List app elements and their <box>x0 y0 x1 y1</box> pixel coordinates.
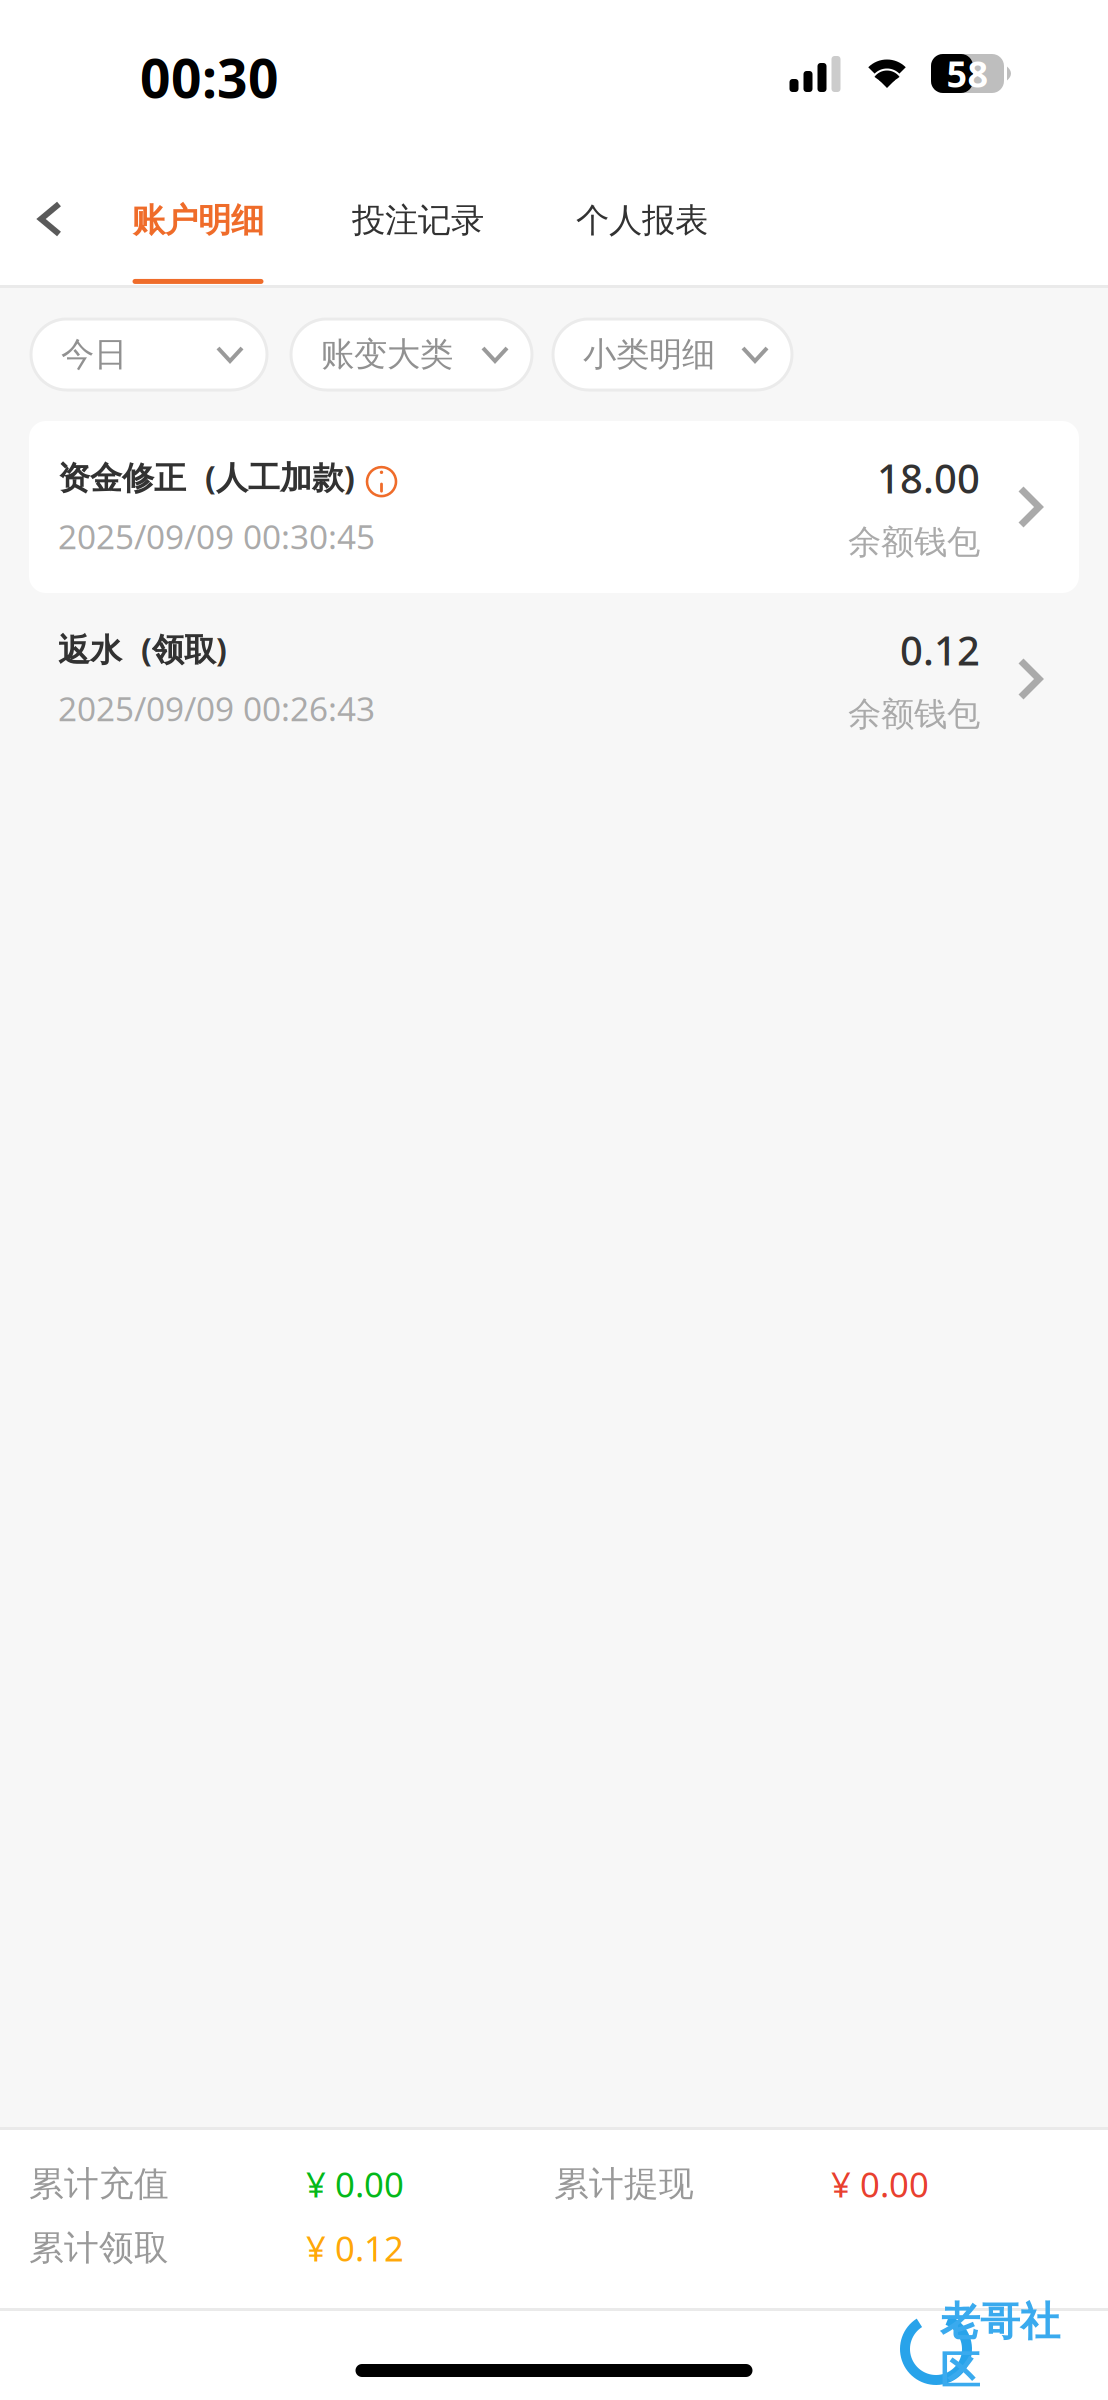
staticText: 返水 <box>58 631 122 670</box>
staticText: 账户明细 <box>132 200 264 241</box>
button[interactable]: 资金修正 <box>29 421 1079 593</box>
staticText: 小类明细 <box>583 334 715 375</box>
button[interactable]: 账变大类 <box>291 319 532 390</box>
staticText: ¥ 0.12 <box>306 2225 404 2271</box>
staticText: 累计充值 <box>29 2163 169 2205</box>
button[interactable]: 投注记录 <box>330 147 506 285</box>
staticText: ¥ 0.00 <box>306 2161 404 2207</box>
button[interactable]: 小类明细 <box>553 319 792 390</box>
staticText: 2025/09/09 00:30:45 <box>58 514 375 558</box>
staticText: 余额钱包 <box>848 694 980 734</box>
staticText: 0.12 <box>900 623 980 677</box>
staticText: 老哥社区 <box>940 2297 1060 2395</box>
staticText: 58 <box>946 50 988 97</box>
staticText: 今日 <box>61 334 127 375</box>
button[interactable]: Back <box>0 147 86 285</box>
staticText: 余额钱包 <box>848 522 980 562</box>
button[interactable]: 个人报表 <box>554 147 730 285</box>
button[interactable]: 今日 <box>31 319 267 390</box>
staticText: 累计领取 <box>29 2227 169 2269</box>
staticText: 投注记录 <box>352 200 484 241</box>
staticText: 2025/09/09 00:26:43 <box>58 686 375 730</box>
staticText: 资金修正 <box>58 459 186 498</box>
button[interactable]: 返水 <box>29 593 1079 765</box>
staticText: 00:30 <box>140 42 279 113</box>
staticText: 累计提现 <box>554 2163 694 2205</box>
staticText: ¥ 0.00 <box>831 2161 929 2207</box>
staticText: 个人报表 <box>576 200 708 241</box>
staticText: 18.00 <box>877 451 980 505</box>
button[interactable]: 账户明细 <box>110 147 286 285</box>
staticText: (人工加款) <box>205 456 355 498</box>
staticText: 账变大类 <box>321 334 453 375</box>
staticText: (领取) <box>141 628 227 670</box>
